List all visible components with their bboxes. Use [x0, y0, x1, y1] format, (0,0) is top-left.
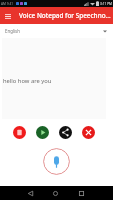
staticText: hello how are you: [3, 77, 52, 85]
button[interactable]: Play: [36, 126, 49, 139]
staticText: Voice Notepad for Speechnot...: [19, 11, 112, 20]
button[interactable]: Home: [49, 186, 62, 200]
button[interactable]: Start voice input: [43, 148, 70, 175]
button[interactable]: Clear: [82, 126, 95, 139]
button[interactable]: Open navigation drawer: [0, 8, 16, 24]
staticText: 3:11 PM: [100, 2, 112, 6]
button[interactable]: Back: [24, 186, 37, 200]
button[interactable]: Share: [59, 126, 72, 139]
button[interactable]: Recent apps: [75, 186, 88, 200]
staticText: AM 9:41: [1, 2, 14, 6]
button[interactable]: Stop recording: [13, 126, 26, 139]
staticText: English: [5, 28, 20, 34]
button[interactable]: English: [0, 24, 113, 38]
